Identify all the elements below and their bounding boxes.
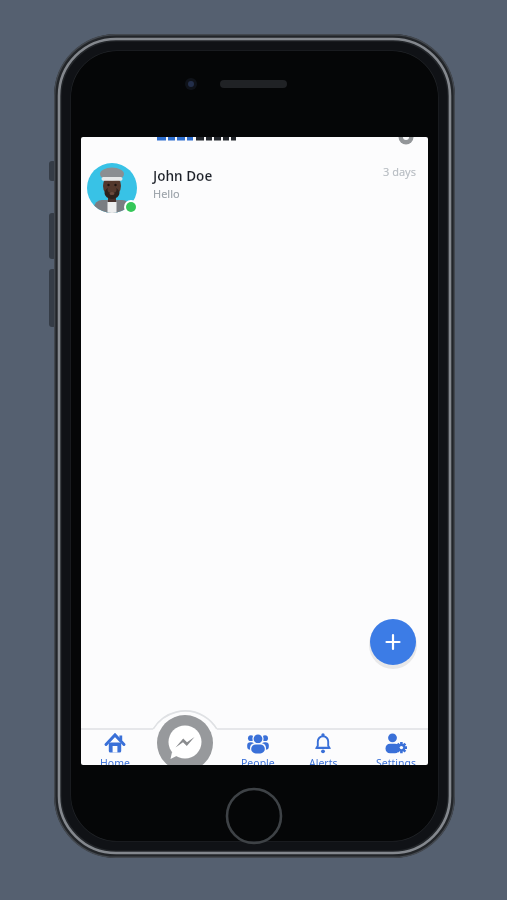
button[interactable]: John Doe — [81, 150, 428, 226]
staticText: People — [241, 756, 275, 765]
button[interactable] — [370, 619, 416, 665]
staticText: John Doe — [153, 167, 213, 185]
staticText: Settings — [376, 756, 416, 765]
staticText: Alerts — [309, 756, 338, 765]
button[interactable] — [157, 715, 213, 765]
staticText: Home — [100, 756, 130, 765]
staticText: 3 days — [383, 164, 416, 179]
button[interactable]: Alerts — [293, 732, 353, 765]
button[interactable]: Home — [85, 732, 145, 765]
button[interactable]: People — [228, 732, 288, 765]
staticText: Hello — [153, 186, 180, 201]
button[interactable]: Settings — [366, 732, 426, 765]
